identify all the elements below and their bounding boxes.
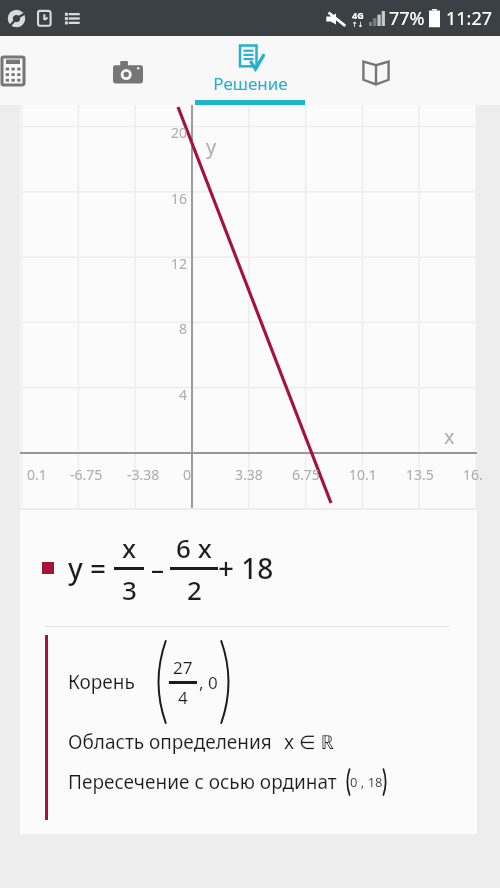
- staticText: Пересечение с осью ординат: [68, 769, 337, 795]
- staticText: 4: [178, 686, 188, 709]
- staticText: y =: [68, 549, 107, 587]
- button[interactable]: Dictionary: [353, 50, 399, 96]
- staticText: –: [151, 551, 165, 586]
- staticText: -6.75: [70, 465, 103, 484]
- staticText: 3: [122, 572, 137, 607]
- staticText: 13.5: [406, 465, 434, 484]
- staticText: 4G: [352, 9, 364, 21]
- staticText: ↑↓: [352, 21, 364, 29]
- staticText: 20: [171, 123, 188, 142]
- staticText: 0: [183, 465, 192, 484]
- staticText: x ∈ ℝ: [284, 729, 335, 755]
- staticText: Область определения: [68, 729, 272, 755]
- staticText: 16.: [463, 465, 483, 484]
- staticText: 12: [171, 254, 188, 273]
- button[interactable]: Camera: [105, 50, 151, 96]
- staticText: 0 , 18: [350, 773, 383, 791]
- button[interactable]: Решение: [195, 36, 305, 105]
- staticText: -3.38: [127, 465, 160, 484]
- staticText: 6 x: [176, 530, 212, 565]
- staticText: , 0: [199, 671, 218, 694]
- button[interactable]: Calculator: [0, 48, 36, 94]
- staticText: 77%: [389, 6, 425, 31]
- staticText: + 18: [218, 549, 274, 587]
- staticText: 2: [187, 572, 202, 607]
- staticText: y: [206, 133, 217, 160]
- staticText: 16: [171, 189, 188, 208]
- staticText: 0.1: [27, 465, 47, 484]
- staticText: x: [444, 423, 455, 450]
- staticText: 27: [173, 656, 193, 679]
- staticText: x: [122, 530, 137, 565]
- staticText: 11:27: [446, 6, 493, 31]
- staticText: Корень: [68, 669, 135, 695]
- staticText: 4: [179, 385, 188, 404]
- staticText: Решение: [213, 72, 288, 95]
- staticText: 6.75: [292, 465, 320, 484]
- staticText: 3.38: [235, 465, 263, 484]
- staticText: 8: [179, 319, 188, 338]
- staticText: 10.1: [349, 465, 377, 484]
